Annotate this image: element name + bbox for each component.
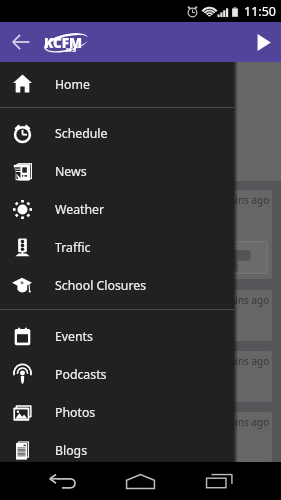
staticText: Podcasts (55, 366, 107, 383)
button[interactable]: School Closures (0, 266, 234, 304)
staticText: Photos (55, 404, 96, 421)
button[interactable]: Events (0, 317, 234, 355)
button[interactable]: Photos (0, 393, 234, 431)
staticText: School Closures (55, 277, 147, 294)
staticText: mins ago (226, 415, 270, 429)
staticText: 99.8 (66, 47, 76, 54)
staticText: Traffic (55, 239, 91, 256)
button[interactable]: Back (8, 29, 34, 55)
button[interactable]: Weather (0, 190, 234, 228)
button[interactable]: mins ago (10, 351, 272, 402)
button[interactable]: mins ago (10, 412, 272, 462)
staticText: News (55, 163, 87, 180)
button[interactable]: Podcasts (0, 355, 234, 393)
button[interactable]: mins ago (10, 190, 272, 279)
staticText: Schedule (55, 125, 108, 142)
staticText: mins ago (226, 293, 270, 307)
button[interactable]: Traffic (0, 228, 234, 266)
button[interactable]: Schedule (0, 114, 234, 152)
button[interactable]: Dislike (204, 241, 268, 274)
staticText: Weather (55, 201, 105, 218)
staticText: 11:50 (244, 3, 276, 20)
button[interactable]: Blogs (0, 431, 234, 469)
button[interactable]: mins ago (10, 290, 272, 341)
staticText: Blogs (55, 442, 88, 459)
staticText: mins ago (226, 193, 270, 207)
button[interactable]: Home (124, 470, 157, 492)
staticText: mins ago (226, 354, 270, 368)
staticText: KCFM (44, 34, 83, 52)
button[interactable]: Back (47, 470, 77, 492)
staticText: Events (55, 328, 93, 345)
button[interactable]: News (0, 152, 234, 190)
button[interactable]: Recents (204, 470, 235, 492)
button[interactable]: Home (0, 62, 234, 107)
staticText: Home (55, 76, 90, 93)
button[interactable]: Play (248, 26, 280, 58)
